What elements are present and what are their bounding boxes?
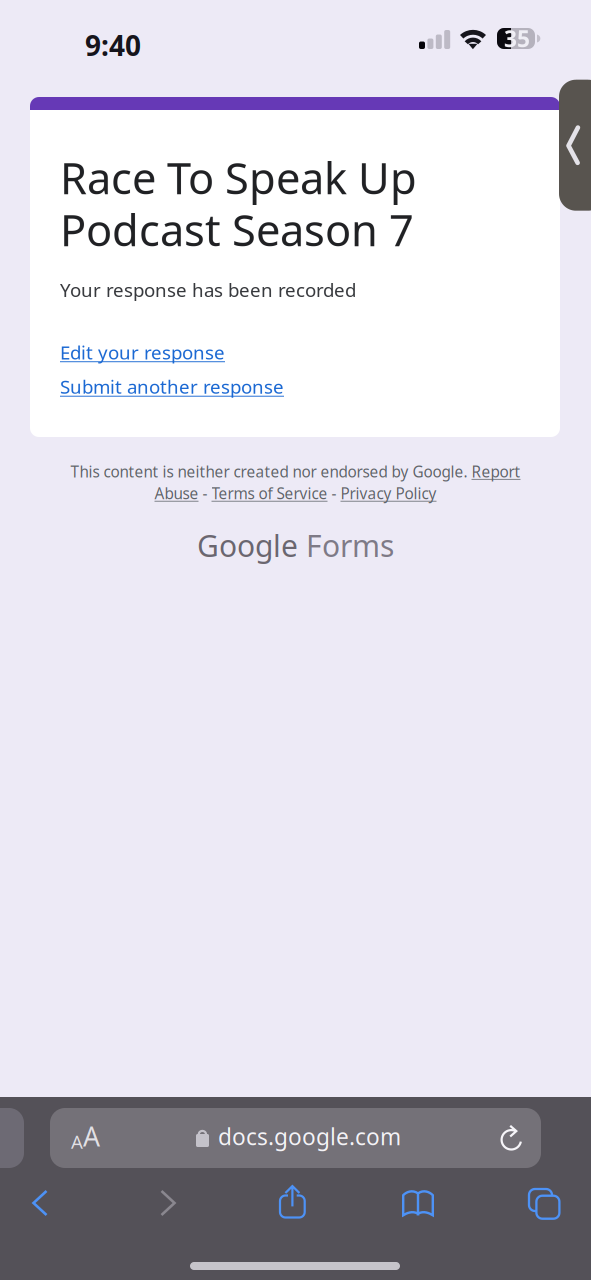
button[interactable]: Bookmarks (378, 1172, 458, 1234)
staticText: Forms (298, 525, 394, 566)
staticText: This content is neither created nor endo… (70, 461, 520, 482)
button[interactable]: Share (253, 1172, 333, 1234)
staticText: docs.google.com (218, 1121, 401, 1152)
button[interactable]: Tabs (505, 1172, 585, 1234)
staticText: A (83, 1118, 100, 1154)
button[interactable]: A (50, 1108, 541, 1168)
button[interactable]: Submit another response (60, 374, 284, 399)
staticText: Race To Speak Up (60, 148, 417, 207)
staticText: Google (197, 525, 298, 566)
staticText: Podcast Season 7 (60, 200, 414, 259)
button[interactable]: Back (5, 1172, 85, 1234)
staticText: Submit another response (60, 374, 284, 399)
staticText: 9:40 (85, 26, 141, 64)
staticText: Edit your response (60, 339, 225, 365)
staticText: 35 (504, 23, 530, 54)
staticText: Your response has been recorded (60, 277, 356, 302)
staticText: A (71, 1129, 83, 1154)
button[interactable]: Edit your response (60, 339, 225, 365)
button[interactable]: Back to app (559, 80, 591, 211)
staticText: Abuse - Terms of Service - Privacy Polic… (154, 483, 436, 504)
button[interactable]: Forward (130, 1172, 210, 1234)
